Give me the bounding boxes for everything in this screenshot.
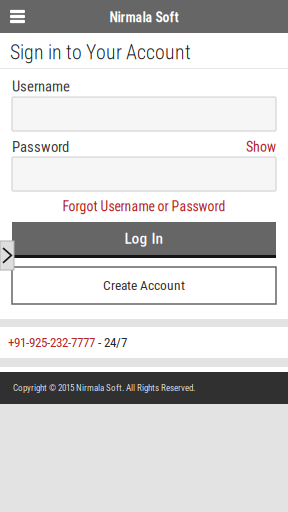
- button[interactable]: Menu: [0, 0, 42, 33]
- staticText: Username: [12, 78, 70, 95]
- button[interactable]: Log In: [12, 222, 276, 258]
- button[interactable]: Forgot Username or Password: [12, 191, 276, 222]
- staticText: Log In: [124, 229, 163, 247]
- staticText: Password: [12, 138, 69, 156]
- button[interactable]: +91-925-232-7777: [8, 335, 95, 350]
- staticText: Create Account: [103, 278, 185, 293]
- button[interactable]: Create Account: [12, 267, 276, 304]
- staticText: Forgot Username or Password: [62, 198, 225, 215]
- staticText: +91-925-232-7777: [8, 335, 95, 350]
- staticText: Sign in to Your Account: [10, 41, 191, 64]
- button[interactable]: Open side panel: [0, 241, 14, 270]
- staticText: Show: [246, 139, 276, 155]
- staticText: - 24/7: [95, 335, 127, 350]
- staticText: Copyright © 2015 Nirmala Soft. All Right…: [13, 383, 195, 393]
- button[interactable]: Show: [246, 139, 276, 155]
- staticText: Nirmala Soft: [109, 9, 178, 26]
